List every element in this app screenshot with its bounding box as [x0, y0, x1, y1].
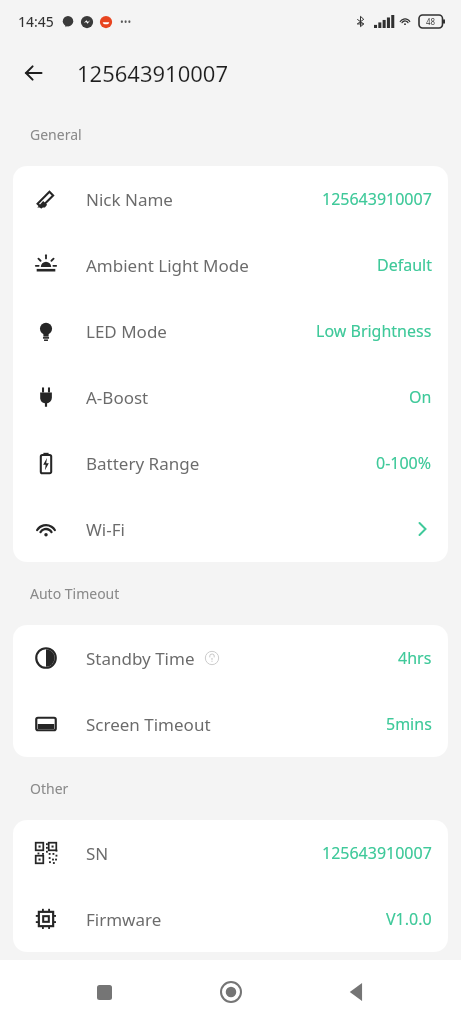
staticText: Firmware [86, 908, 162, 931]
staticText: 14:45 [18, 12, 54, 31]
button[interactable]: Back [12, 51, 56, 95]
staticText: V1.0.0 [386, 908, 432, 930]
staticText: 125643910007 [322, 188, 432, 210]
button[interactable]: LED Mode [13, 298, 448, 364]
button[interactable]: A-Boost [13, 364, 448, 430]
staticText: Low Brightness [316, 320, 432, 342]
staticText: 5mins [386, 713, 432, 735]
staticText: On [409, 386, 432, 408]
staticText: ••• [120, 15, 132, 29]
button[interactable]: SN [13, 820, 448, 886]
staticText: Auto Timeout [30, 584, 120, 603]
staticText: Standby Time [86, 647, 195, 670]
staticText: 0-100% [376, 452, 432, 474]
staticText: LED Mode [86, 320, 167, 343]
staticText: 125643910007 [77, 58, 229, 88]
button[interactable]: Nick Name [13, 166, 448, 232]
staticText: SN [86, 842, 109, 865]
staticText: Battery Range [86, 452, 200, 475]
staticText: A-Boost [86, 386, 149, 409]
staticText: Wi-Fi [86, 518, 125, 541]
staticText: 4hrs [398, 647, 432, 669]
staticText: Nick Name [86, 188, 173, 211]
staticText: General [30, 125, 82, 144]
button[interactable]: Ambient Light Mode [13, 232, 448, 298]
button[interactable]: Recent apps [81, 969, 127, 1015]
button[interactable]: Battery Range [13, 430, 448, 496]
button[interactable]: Wi-Fi [13, 496, 448, 562]
button[interactable]: Back [334, 969, 380, 1015]
staticText: Screen Timeout [86, 713, 211, 736]
button[interactable]: Screen Timeout [13, 691, 448, 757]
button[interactable]: Firmware [13, 886, 448, 952]
staticText: 125643910007 [322, 842, 432, 864]
staticText: Ambient Light Mode [86, 254, 249, 277]
staticText: 48 [426, 16, 436, 27]
staticText: Default [377, 254, 432, 276]
staticText: Other [30, 779, 69, 798]
button[interactable]: Standby Time [13, 625, 448, 691]
button[interactable]: Home [208, 969, 254, 1015]
